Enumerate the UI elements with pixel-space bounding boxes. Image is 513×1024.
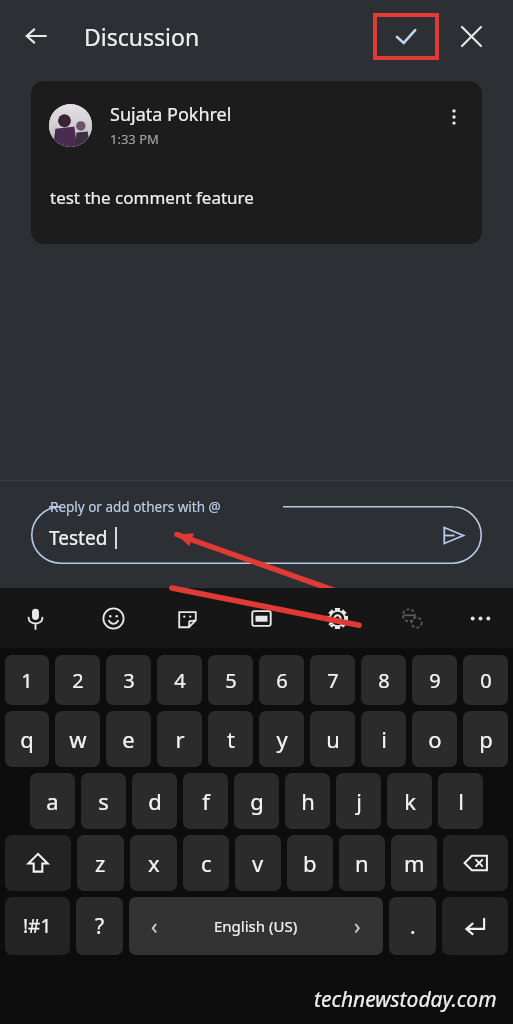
staticText: c xyxy=(201,848,212,878)
button[interactable]: l xyxy=(438,773,483,829)
button[interactable]: More options xyxy=(432,95,476,139)
staticText: English (US) xyxy=(214,916,298,936)
staticText: i xyxy=(381,724,387,754)
staticText: 1 xyxy=(21,667,33,694)
button[interactable]: Send xyxy=(432,514,474,556)
button[interactable]: g xyxy=(234,773,279,829)
button[interactable]: y xyxy=(259,711,304,767)
button[interactable]: Translate xyxy=(390,596,434,640)
staticText: 6 xyxy=(276,667,288,694)
button[interactable]: More xyxy=(458,596,502,640)
button[interactable]: Shift xyxy=(5,835,71,891)
button[interactable]: e xyxy=(106,711,151,767)
staticText: 3 xyxy=(123,667,135,694)
button[interactable]: 3 xyxy=(106,655,151,705)
button[interactable]: p xyxy=(463,711,508,767)
staticText: d xyxy=(148,786,162,816)
staticText: w xyxy=(69,724,87,754)
staticText: r xyxy=(175,724,185,754)
staticText: › xyxy=(354,912,361,941)
button[interactable]: Stickers xyxy=(165,596,209,640)
staticText: 5 xyxy=(225,667,237,694)
staticText: 9 xyxy=(429,667,441,694)
button[interactable]: 0 xyxy=(463,655,508,705)
staticText: 2 xyxy=(72,667,84,694)
button[interactable]: Voice input xyxy=(13,596,57,640)
staticText: p xyxy=(479,724,493,754)
staticText: l xyxy=(458,786,464,816)
button[interactable]: v xyxy=(235,835,281,891)
button[interactable]: f xyxy=(183,773,228,829)
staticText: u xyxy=(326,724,340,754)
button[interactable]: u xyxy=(310,711,355,767)
button[interactable]: h xyxy=(285,773,330,829)
staticText: 8 xyxy=(378,667,390,694)
button[interactable]: ? xyxy=(76,897,123,955)
button[interactable]: Back xyxy=(12,12,60,60)
staticText: e xyxy=(122,724,135,754)
button[interactable]: 4 xyxy=(157,655,202,705)
button[interactable]: j xyxy=(336,773,381,829)
staticText: z xyxy=(95,848,106,878)
button[interactable]: i xyxy=(361,711,406,767)
button[interactable]: 6 xyxy=(259,655,304,705)
button[interactable]: w xyxy=(55,711,100,767)
staticText: y xyxy=(276,724,288,754)
button[interactable]: o xyxy=(412,711,457,767)
button[interactable]: . xyxy=(389,897,436,955)
button[interactable]: Post comment xyxy=(373,13,439,60)
button[interactable]: 5 xyxy=(208,655,253,705)
button[interactable]: 9 xyxy=(412,655,457,705)
staticText: s xyxy=(98,786,109,816)
staticText: ‹ xyxy=(151,912,158,941)
staticText: o xyxy=(428,724,442,754)
button[interactable]: z xyxy=(77,835,124,891)
button[interactable]: k xyxy=(387,773,432,829)
button[interactable]: Tested xyxy=(31,506,482,564)
staticText: Reply or add others with @ xyxy=(50,498,221,516)
button[interactable]: t xyxy=(208,711,253,767)
button[interactable]: c xyxy=(183,835,229,891)
staticText: Tested xyxy=(49,525,108,551)
staticText: ? xyxy=(95,912,105,941)
staticText: f xyxy=(202,786,210,816)
button[interactable]: x xyxy=(130,835,177,891)
staticText: 1:33 PM xyxy=(110,130,159,148)
button[interactable]: n xyxy=(339,835,385,891)
staticText: h xyxy=(301,786,315,816)
button[interactable]: 2 xyxy=(55,655,100,705)
staticText: 4 xyxy=(174,667,186,694)
button[interactable]: q xyxy=(5,711,49,767)
button[interactable]: m xyxy=(391,835,437,891)
button[interactable]: Sujata Pokhrel xyxy=(31,81,482,244)
button[interactable]: 7 xyxy=(310,655,355,705)
staticText: b xyxy=(303,848,317,878)
button[interactable]: GIF xyxy=(239,596,283,640)
staticText: 7 xyxy=(327,667,339,694)
button[interactable]: Emoji xyxy=(91,596,135,640)
button[interactable]: ‹ xyxy=(129,897,383,955)
button[interactable]: a xyxy=(30,773,75,829)
staticText: !#1 xyxy=(23,913,52,939)
staticText: k xyxy=(404,786,416,816)
staticText: Discussion xyxy=(84,21,200,52)
staticText: . xyxy=(410,912,416,941)
button[interactable]: s xyxy=(81,773,126,829)
button[interactable]: Settings xyxy=(315,596,359,640)
button[interactable]: d xyxy=(132,773,177,829)
button[interactable]: !#1 xyxy=(5,897,70,955)
staticText: n xyxy=(355,848,369,878)
button[interactable]: Enter xyxy=(442,897,508,955)
button[interactable]: Backspace xyxy=(443,835,508,891)
staticText: 0 xyxy=(480,667,492,694)
button[interactable]: 8 xyxy=(361,655,406,705)
button[interactable]: r xyxy=(157,711,202,767)
button[interactable]: 1 xyxy=(5,655,49,705)
staticText: technewstoday.com xyxy=(314,985,497,1014)
button[interactable]: Close xyxy=(449,14,493,58)
staticText: q xyxy=(20,724,34,754)
staticText: v xyxy=(252,848,264,878)
button[interactable]: b xyxy=(287,835,333,891)
staticText: m xyxy=(404,848,425,878)
staticText: t xyxy=(227,724,235,754)
